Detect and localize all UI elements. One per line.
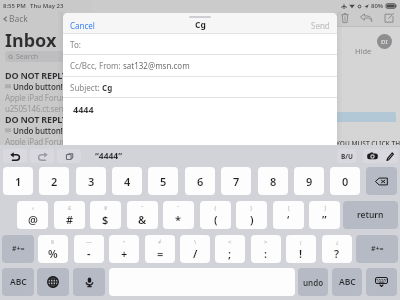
button[interactable]: DO NOT REPLY — [5, 157, 92, 200]
button[interactable]: #+= — [356, 235, 398, 263]
staticText: 5 — [160, 174, 167, 189]
button[interactable]: } — [236, 201, 267, 229]
staticText: Send — [311, 20, 330, 31]
button[interactable]: ˆ — [163, 201, 194, 229]
staticText: 80% — [371, 2, 384, 10]
staticText: #+= — [371, 244, 384, 254]
button[interactable]: Paste — [57, 149, 81, 163]
button[interactable]: 6 — [185, 167, 215, 195]
button[interactable]: ¿ — [322, 235, 352, 263]
button[interactable]: 5 — [148, 167, 178, 195]
button[interactable]: [ — [273, 201, 304, 229]
button[interactable]: ˇ — [127, 201, 158, 229]
staticText: 6 — [197, 174, 204, 189]
button[interactable]: Compose — [382, 11, 396, 24]
staticText: < — [228, 238, 232, 246]
button[interactable]: Redo — [30, 149, 54, 163]
button[interactable]: Markup — [381, 149, 398, 163]
button[interactable]: 9 — [294, 167, 324, 195]
button[interactable]: Reply — [358, 11, 373, 24]
button[interactable]: Cancel — [70, 20, 95, 31]
staticText: = — [157, 246, 164, 261]
staticText: sat132@msn.com — [123, 60, 190, 71]
staticText: Apple iPad Forum — [5, 92, 69, 103]
button[interactable]: Delete — [338, 11, 352, 24]
button[interactable]: ] — [309, 201, 340, 229]
button[interactable]: Search — [5, 51, 87, 62]
button[interactable]: Hide — [355, 46, 372, 56]
staticText: Apple iPad Forum — [5, 180, 69, 191]
button[interactable]: DO NOT REPLY — [5, 69, 92, 112]
staticText: ≠ — [158, 238, 162, 246]
staticText: ABC — [10, 276, 27, 288]
button[interactable]: ABC — [332, 268, 362, 296]
staticText: “4444” — [95, 150, 123, 162]
button[interactable]: Account — [377, 34, 392, 49]
button[interactable]: DO NOT REPLY — [5, 113, 92, 156]
button[interactable]: { — [200, 201, 231, 229]
button[interactable]: undo — [298, 268, 328, 296]
staticText: ABC — [339, 276, 356, 288]
staticText: Cancel — [70, 20, 95, 31]
staticText: 0 — [342, 174, 349, 189]
button[interactable]: Back — [1, 13, 28, 25]
staticText: ¿ — [336, 238, 339, 246]
staticText: u2505146.ct.sen — [5, 103, 64, 112]
button[interactable]: • — [109, 235, 139, 263]
staticText: * — [175, 212, 182, 227]
button[interactable]: \ — [180, 235, 210, 263]
button[interactable]: Send — [311, 20, 330, 31]
staticText: Cc/Bcc, From: — [70, 60, 123, 71]
staticText: / — [193, 246, 198, 261]
button[interactable]: return — [343, 201, 398, 229]
staticText: DO NOT REPLY — [5, 157, 68, 169]
button[interactable]: Hide keyboard — [366, 268, 397, 296]
button[interactable]: 7 — [221, 167, 251, 195]
staticText: u2505146.ct.sen — [5, 191, 64, 200]
staticText: # — [66, 212, 74, 227]
staticText: 4444 — [73, 103, 94, 115]
staticText: Hide — [355, 46, 372, 56]
staticText: #+= — [12, 244, 25, 254]
button[interactable]: Next keyboard — [37, 268, 69, 296]
button[interactable]: Backspace — [366, 167, 397, 195]
staticText: DI — [381, 38, 388, 46]
staticText: To: — [70, 39, 81, 50]
button[interactable]: £ — [54, 201, 85, 229]
button[interactable]: ABC — [2, 268, 34, 296]
staticText: Cg — [102, 82, 113, 93]
button[interactable]: #+= — [2, 235, 34, 263]
button[interactable]: < — [215, 235, 245, 263]
button[interactable]: Undo — [3, 149, 27, 163]
button[interactable]: 1 — [3, 167, 33, 195]
staticText: [ — [288, 204, 290, 212]
button[interactable]: > — [251, 235, 281, 263]
staticText: u2505146.ct.sen — [5, 147, 64, 156]
staticText: Thu May 23 — [30, 2, 64, 10]
button[interactable]: 8 — [258, 167, 288, 195]
staticText: • — [123, 238, 126, 246]
button[interactable]: ≠ — [145, 235, 175, 263]
button[interactable]: 4 — [112, 167, 142, 195]
staticText: 8 — [270, 174, 277, 189]
button[interactable]: 3 — [76, 167, 106, 195]
staticText: Undo button! - — [13, 125, 69, 136]
staticText: ? — [334, 246, 340, 261]
button[interactable]: ‹ — [17, 201, 48, 229]
staticText: & — [138, 212, 147, 227]
button[interactable]: 0 — [330, 167, 360, 195]
button[interactable]: — — [74, 235, 104, 263]
staticText: Cg — [195, 19, 206, 31]
button[interactable]: Insert photo — [363, 149, 381, 163]
staticText: ! — [299, 246, 303, 261]
button[interactable]: ¡ — [286, 235, 316, 263]
button[interactable]: ¥ — [90, 201, 121, 229]
button[interactable]: Dictation — [73, 268, 105, 296]
staticText: 3 — [88, 174, 95, 189]
button[interactable]: B/U — [337, 149, 356, 163]
button[interactable]: 2 — [39, 167, 69, 195]
button[interactable]: § — [38, 235, 68, 263]
staticText: : — [264, 246, 268, 261]
staticText: > — [264, 238, 268, 246]
